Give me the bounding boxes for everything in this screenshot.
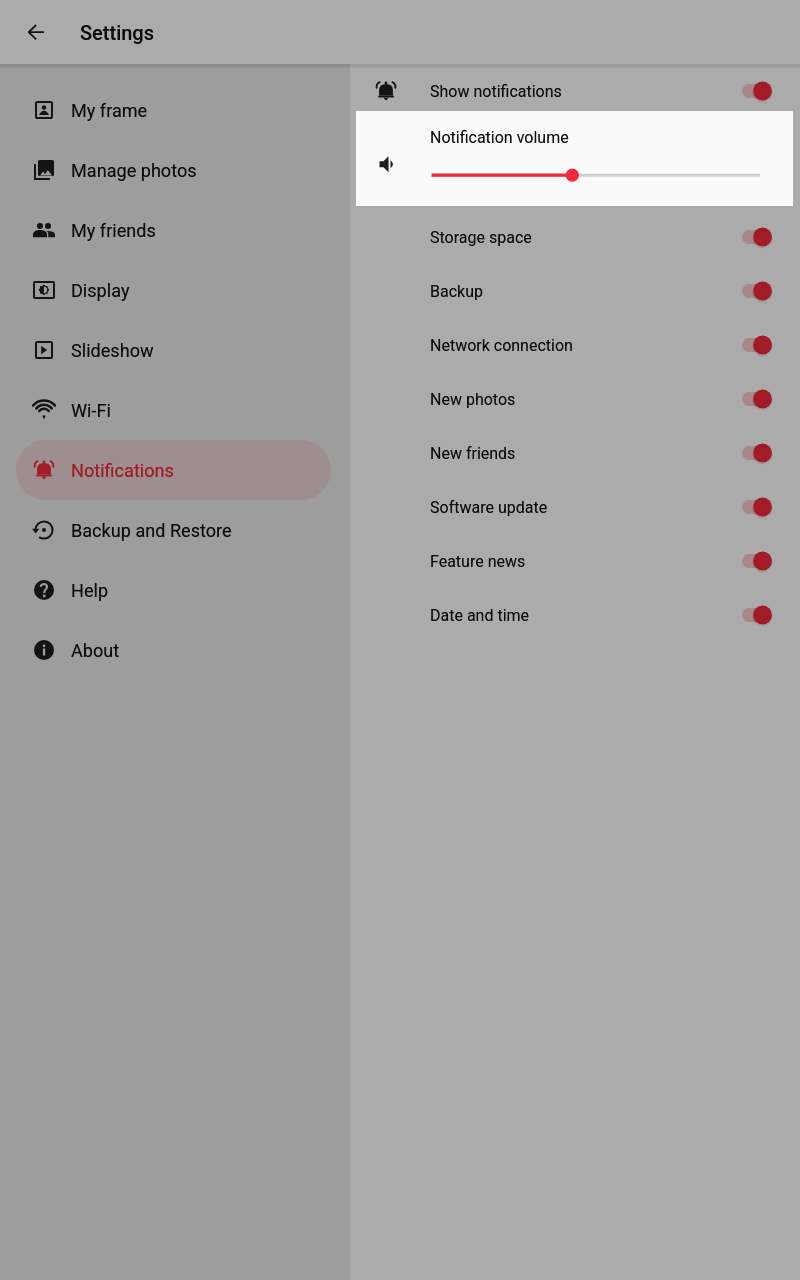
staticText: Backup and Restore xyxy=(71,520,232,541)
staticText: Notification volume xyxy=(430,128,569,147)
staticText: Slideshow xyxy=(71,340,154,361)
button[interactable]: Display xyxy=(16,260,331,320)
button[interactable]: Backup xyxy=(350,264,800,318)
button[interactable]: Toggle notification setting xyxy=(742,330,772,360)
staticText: Date and time xyxy=(430,606,530,625)
staticText: Display xyxy=(71,280,130,301)
staticText: Manage photos xyxy=(71,160,197,181)
staticText: My frame xyxy=(71,100,148,121)
staticText: Feature news xyxy=(430,552,526,571)
staticText: Manage photos xyxy=(71,160,197,181)
button[interactable]: Manage photos xyxy=(16,140,331,200)
staticText: Display xyxy=(71,280,130,301)
button[interactable]: Wi-Fi xyxy=(16,380,331,440)
button[interactable]: My friends xyxy=(16,200,331,260)
button[interactable]: My frame xyxy=(16,80,331,140)
button[interactable]: Help xyxy=(16,560,331,620)
staticText: Date and time xyxy=(430,606,530,625)
button[interactable]: Toggle notification setting xyxy=(742,222,772,252)
button[interactable]: Toggle notification setting xyxy=(742,76,772,106)
staticText: Wi-Fi xyxy=(71,400,111,421)
staticText: Help xyxy=(71,580,109,601)
staticText: My frame xyxy=(71,100,148,121)
button[interactable]: Toggle notification setting xyxy=(742,600,772,630)
staticText: Notifications xyxy=(71,460,174,481)
staticText: Notifications xyxy=(71,460,174,481)
staticText: New photos xyxy=(430,390,516,409)
staticText: New friends xyxy=(430,444,516,463)
staticText: Software update xyxy=(430,498,548,517)
button[interactable]: New friends xyxy=(350,426,800,480)
staticText: Wi-Fi xyxy=(71,400,111,421)
staticText: My friends xyxy=(71,220,156,241)
staticText: Network connection xyxy=(430,336,573,355)
staticText: About xyxy=(71,640,120,661)
staticText: Software update xyxy=(430,498,548,517)
button[interactable]: Slideshow xyxy=(16,320,331,380)
button[interactable]: About xyxy=(16,620,331,680)
button[interactable]: Show notifications xyxy=(350,64,800,118)
staticText: Show notifications xyxy=(430,82,562,101)
staticText: Settings xyxy=(80,21,155,44)
button[interactable]: Toggle notification setting xyxy=(742,546,772,576)
button[interactable]: Network connection xyxy=(350,318,800,372)
button[interactable]: Notifications xyxy=(16,440,331,500)
button[interactable]: Date and time xyxy=(350,588,800,642)
button[interactable]: Toggle notification setting xyxy=(742,492,772,522)
staticText: Network connection xyxy=(430,336,573,355)
staticText: New friends xyxy=(430,444,516,463)
staticText: New photos xyxy=(430,390,516,409)
button[interactable]: Backup and Restore xyxy=(16,500,331,560)
staticText: Feature news xyxy=(430,552,526,571)
staticText: Settings xyxy=(80,21,155,44)
staticText: Backup xyxy=(430,282,483,301)
staticText: Backup and Restore xyxy=(71,520,232,541)
staticText: About xyxy=(71,640,120,661)
staticText: Help xyxy=(71,580,109,601)
staticText: Show notifications xyxy=(430,82,562,101)
staticText: Notification volume xyxy=(430,128,569,147)
button[interactable]: Toggle notification setting xyxy=(742,384,772,414)
button[interactable]: Software update xyxy=(350,480,800,534)
button[interactable]: Notification volume xyxy=(356,111,793,206)
button[interactable]: Storage space xyxy=(350,210,800,264)
button[interactable]: Feature news xyxy=(350,534,800,588)
button[interactable]: Toggle notification setting xyxy=(742,276,772,306)
button[interactable]: Toggle notification setting xyxy=(742,438,772,468)
staticText: My friends xyxy=(71,220,156,241)
button[interactable]: Back xyxy=(16,12,56,52)
staticText: Slideshow xyxy=(71,340,154,361)
button[interactable]: New photos xyxy=(350,372,800,426)
staticText: Storage space xyxy=(430,228,532,247)
staticText: Storage space xyxy=(430,228,532,247)
staticText: Backup xyxy=(430,282,483,301)
